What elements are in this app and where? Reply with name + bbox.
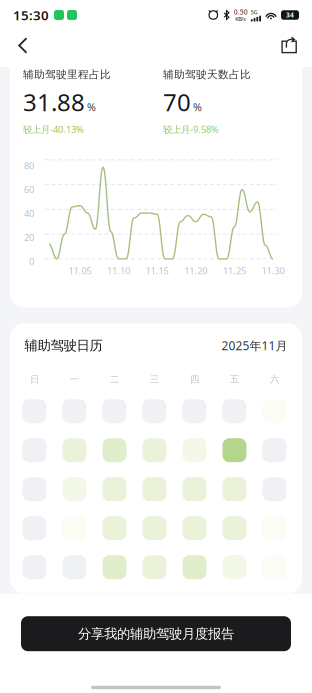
staticText: 较上月-9.58% [163, 123, 219, 135]
staticText: 四 [190, 374, 199, 385]
staticText: 5G [251, 9, 258, 16]
button[interactable]: 分享 [273, 30, 305, 60]
staticText: 日 [30, 374, 39, 385]
staticText: 11.15 [146, 264, 169, 277]
staticText: 60 [24, 183, 34, 196]
staticText: 辅助驾驶日历 [24, 337, 102, 354]
staticText: 11.30 [261, 264, 284, 277]
staticText: 0.50 [234, 7, 248, 16]
staticText: 15:30 [13, 6, 49, 24]
staticText: 辅助驾驶里程占比 [23, 68, 111, 81]
staticText: 五 [230, 374, 239, 385]
staticText: 11.20 [184, 264, 207, 277]
staticText: 二 [110, 374, 119, 385]
staticText: 11.05 [68, 264, 91, 277]
staticText: % [87, 100, 96, 114]
button[interactable]: 分享我的辅助驾驶月度报告 [21, 616, 291, 651]
staticText: 0 [29, 255, 34, 267]
staticText: 11.25 [223, 264, 246, 277]
staticText: 20 [24, 231, 34, 243]
staticText: 31.88 [23, 86, 85, 118]
staticText: 辅助驾驶天数占比 [163, 68, 251, 81]
staticText: 六 [270, 374, 279, 385]
staticText: 80 [24, 159, 34, 172]
staticText: 较上月-40.13% [23, 123, 84, 135]
staticText: 40 [24, 207, 34, 220]
staticText: % [193, 100, 202, 114]
staticText: 三 [150, 374, 159, 385]
staticText: 70 [163, 86, 191, 118]
staticText: 2025年11月 [221, 338, 287, 353]
button[interactable]: 返回 [7, 30, 39, 60]
staticText: 分享我的辅助驾驶月度报告 [78, 625, 234, 642]
staticText: 一 [70, 374, 79, 385]
staticText: KB/s [235, 15, 246, 22]
staticText: 11.10 [107, 264, 130, 277]
staticText: 34 [286, 11, 294, 19]
